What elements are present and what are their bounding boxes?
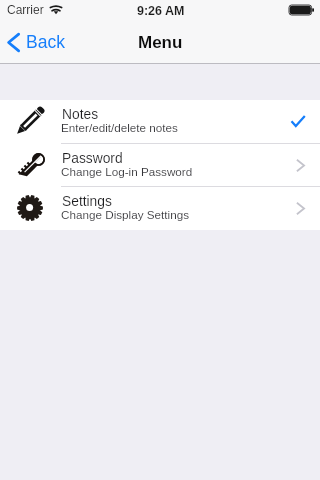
button[interactable]: Password — [0, 144, 320, 187]
other: Selected — [291, 115, 306, 127]
staticText: Enter/edit/delete notes — [61, 121, 178, 134]
staticText: 9:26 AM — [137, 4, 185, 18]
staticText: Back — [26, 32, 65, 52]
staticText: Settings — [62, 194, 112, 209]
button[interactable]: Notes — [0, 100, 320, 143]
staticText: Menu — [138, 33, 183, 52]
staticText: Password — [62, 151, 123, 166]
staticText: Change Display Settings — [61, 208, 189, 221]
staticText: Carrier — [7, 3, 44, 16]
button[interactable]: Back — [0, 20, 73, 64]
staticText: Change Log-in Password — [61, 165, 193, 178]
button[interactable]: Settings — [0, 187, 320, 230]
other: Back — [7, 33, 20, 52]
staticText: Notes — [62, 107, 99, 122]
other: Open Settings — [296, 202, 305, 215]
other: Open Password — [296, 159, 305, 172]
